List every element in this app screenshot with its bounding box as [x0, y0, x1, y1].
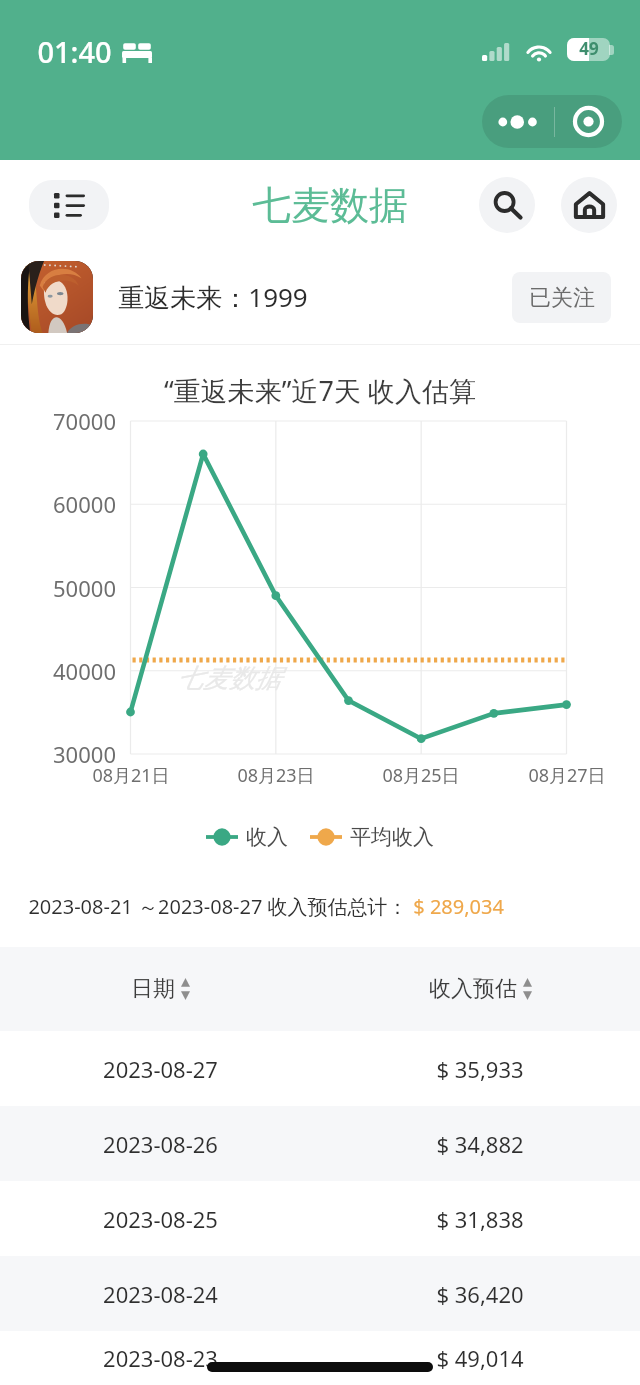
- staticText: $ 34,882: [436, 1129, 524, 1159]
- staticText: 收入预估: [429, 975, 517, 1003]
- staticText: 08月23日: [237, 763, 315, 788]
- staticText: 平均收入: [350, 824, 434, 850]
- staticText: 08月25日: [382, 763, 460, 788]
- staticText: 01:40: [37, 32, 112, 71]
- staticText: 2023-08-25: [103, 1204, 218, 1234]
- button[interactable]: Home: [561, 177, 617, 233]
- button[interactable]: 2023-08-23: [0, 1331, 640, 1385]
- staticText: “重返未来”近7天 收入估算: [164, 372, 476, 409]
- staticText: 50000: [53, 573, 116, 603]
- staticText: 2023-08-23: [103, 1343, 218, 1373]
- staticText: 已关注: [529, 284, 595, 312]
- staticText: $ 35,933: [436, 1054, 524, 1084]
- button[interactable]: 2023-08-24: [0, 1256, 640, 1331]
- button[interactable]: Search: [479, 177, 535, 233]
- staticText: $ 49,014: [436, 1343, 524, 1373]
- staticText: $ 289,034: [408, 893, 504, 920]
- button[interactable]: 2023-08-27: [0, 1031, 640, 1106]
- staticText: 日期: [131, 975, 175, 1003]
- staticText: $ 31,838: [436, 1204, 524, 1234]
- button[interactable]: 2023-08-25: [0, 1181, 640, 1256]
- staticText: 2023-08-24: [103, 1279, 218, 1309]
- staticText: 七麦数据: [252, 181, 408, 230]
- staticText: 2023-08-27: [103, 1054, 218, 1084]
- button[interactable]: 已关注: [512, 272, 611, 323]
- staticText: 08月27日: [528, 763, 606, 788]
- staticText: 30000: [53, 739, 116, 769]
- staticText: 60000: [53, 489, 116, 519]
- staticText: 2023-08-26: [103, 1129, 218, 1159]
- button[interactable]: Menu: [29, 180, 109, 230]
- staticText: 七麦数据: [177, 662, 281, 695]
- staticText: 收入: [246, 824, 288, 850]
- button[interactable]: More options: [482, 95, 622, 148]
- staticText: $ 36,420: [436, 1279, 524, 1309]
- staticText: 49: [579, 38, 599, 60]
- button[interactable]: 重返未来：1999: [0, 250, 640, 344]
- staticText: 70000: [53, 406, 116, 436]
- button[interactable]: 2023-08-26: [0, 1106, 640, 1181]
- staticText: 08月21日: [92, 763, 170, 788]
- staticText: 40000: [53, 656, 116, 686]
- staticText: 2023-08-21 ～2023-08-27 收入预估总计：: [28, 893, 408, 920]
- staticText: 重返未来：1999: [118, 279, 308, 315]
